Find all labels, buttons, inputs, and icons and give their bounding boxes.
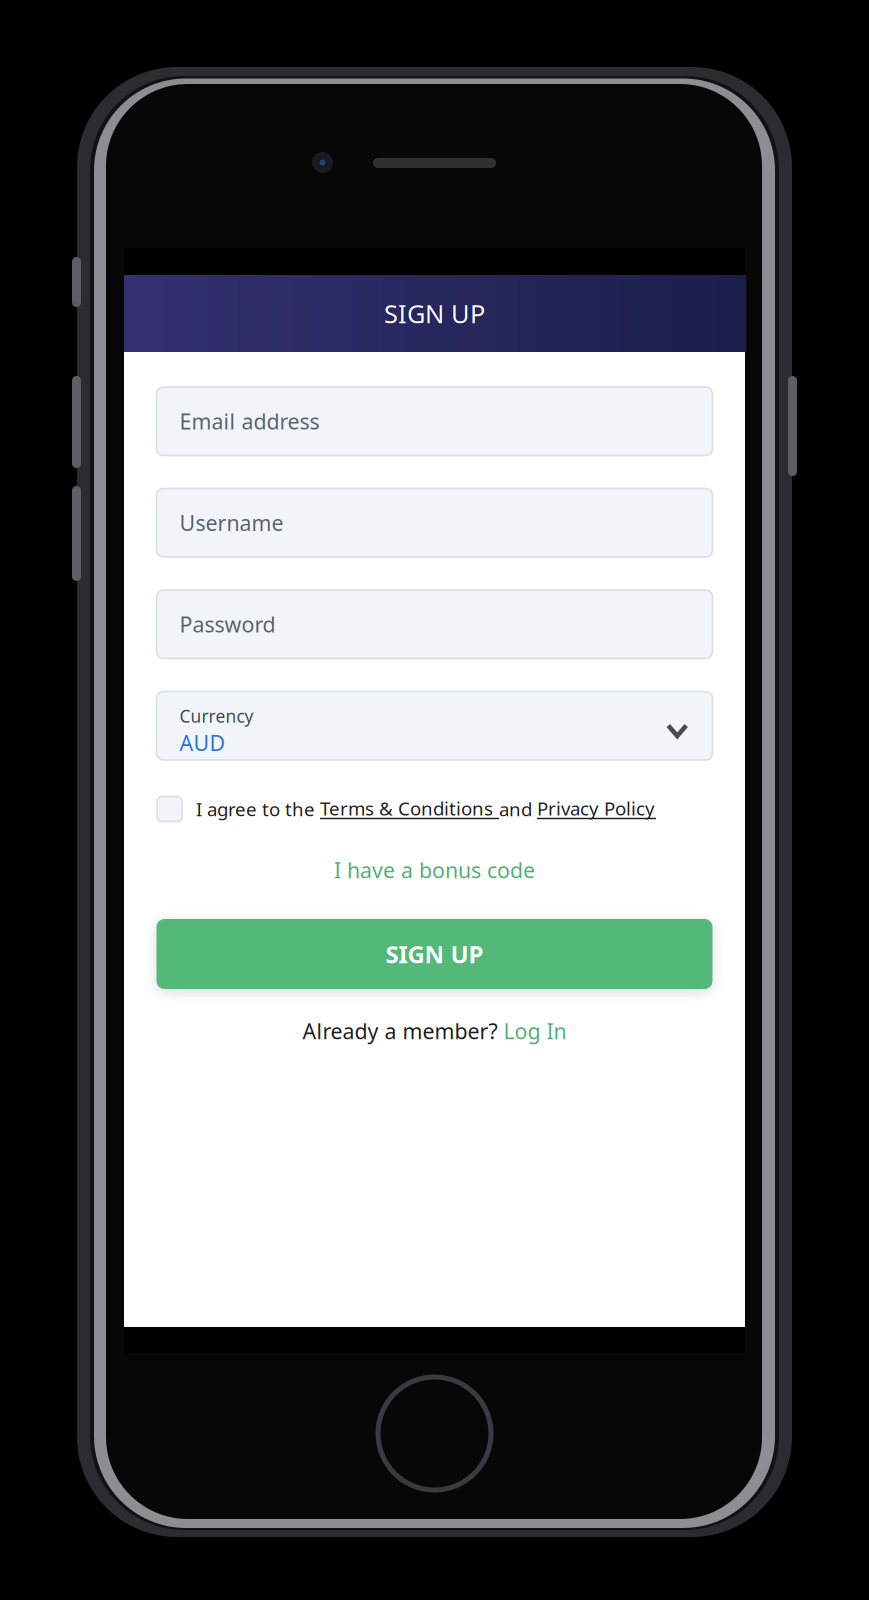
staticText: Username bbox=[179, 509, 283, 537]
button[interactable]: I have a bonus code bbox=[124, 855, 745, 885]
staticText: AUD bbox=[179, 729, 225, 757]
staticText: Log In bbox=[503, 1017, 566, 1045]
staticText: I agree to the bbox=[196, 797, 320, 821]
button[interactable]: Password bbox=[156, 590, 712, 658]
staticText: I have a bonus code bbox=[334, 856, 535, 884]
button[interactable]: Currency bbox=[156, 691, 712, 760]
button[interactable]: Privacy Policy bbox=[537, 799, 656, 819]
staticText: Password bbox=[179, 610, 275, 638]
button[interactable]: Username bbox=[156, 488, 712, 557]
button[interactable]: Email address bbox=[156, 387, 712, 455]
button[interactable]: SIGN UP bbox=[156, 919, 712, 989]
staticText: Terms & Conditions bbox=[320, 796, 498, 821]
staticText: Already a member? bbox=[302, 1017, 503, 1045]
staticText: SIGN UP bbox=[385, 938, 483, 970]
staticText: and bbox=[499, 797, 537, 821]
staticText: Email address bbox=[179, 407, 319, 435]
button[interactable]: Log In bbox=[503, 1017, 566, 1045]
staticText: SIGN UP bbox=[384, 297, 485, 330]
staticText: Privacy Policy bbox=[537, 796, 655, 821]
button[interactable]: Agree to Terms and Conditions bbox=[157, 796, 182, 821]
button[interactable]: Terms & Conditions bbox=[320, 799, 499, 819]
staticText: Currency bbox=[179, 705, 253, 728]
